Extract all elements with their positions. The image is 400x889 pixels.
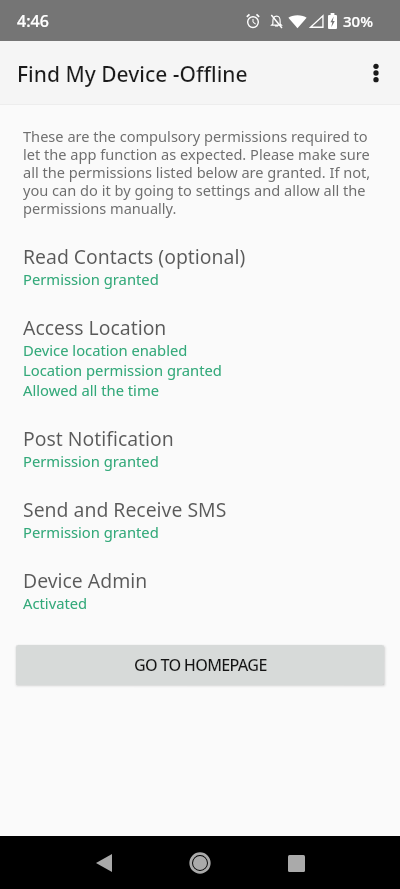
staticText: Find My Device -Offline [17,60,248,89]
staticText: Permission granted [23,522,159,542]
staticText: Permission granted [23,451,159,471]
button[interactable]: More options [352,49,400,97]
staticText: Read Contacts (optional) [23,243,246,269]
staticText: Location permission granted [23,360,222,380]
staticText: Permission granted [23,269,159,289]
button[interactable]: Recents [272,839,320,887]
button[interactable]: Back [80,839,128,887]
button[interactable]: Home [176,839,224,887]
button[interactable]: GO TO HOMEPAGE [16,645,384,685]
staticText: Post Notification [23,425,174,451]
staticText: Device Admin [23,567,148,593]
staticText: Allowed all the time [23,380,160,400]
staticText: Access Location [23,314,167,340]
staticText: GO TO HOMEPAGE [134,654,267,676]
staticText: 4:46 [17,10,49,32]
staticText: Send and Receive SMS [23,496,227,522]
staticText: Device location enabled [23,340,188,360]
staticText: 30% [343,11,373,31]
staticText: These are the compulsory permissions req… [23,126,377,219]
staticText: Activated [23,593,88,613]
